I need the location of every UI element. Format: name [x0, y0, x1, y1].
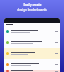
- button[interactable]: [4, 59, 60, 70]
- staticText: Easily create: [23, 3, 42, 7]
- staticText: design leaderboards: [17, 8, 47, 12]
- button[interactable]: [4, 48, 60, 59]
- button[interactable]: [4, 70, 60, 72]
- button[interactable]: [4, 26, 60, 37]
- button[interactable]: [4, 37, 60, 48]
